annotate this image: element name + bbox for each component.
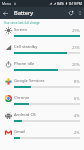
staticText: 4% [74,113,80,118]
staticText: 8% [74,79,80,84]
staticText: 2% [74,130,80,135]
staticText: 20% [72,62,80,67]
staticText: Cell standby [14,44,38,50]
staticText: Google Services [14,78,45,84]
button[interactable]: Android OS [0,110,84,127]
button[interactable]: Navigate up [0,7,11,19]
staticText: Battery [14,9,34,17]
staticText: Screen [14,27,27,33]
button[interactable]: Chrome [0,93,84,110]
staticText: 6% [74,96,80,101]
button[interactable]: Google Services [0,76,84,93]
staticText: Menu [2,1,12,6]
button[interactable]: Cell standby [0,42,84,59]
button[interactable]: Screen [0,25,84,42]
staticText: Use since last full charge [4,21,40,25]
staticText: Phone idle [14,61,35,67]
staticText: 23% [72,45,80,50]
staticText: 84% [57,1,64,6]
button[interactable]: Gmail [0,127,84,144]
button[interactable]: Refresh [66,7,76,19]
staticText: 29% [72,28,80,33]
staticText: Gmail [14,129,26,135]
button[interactable]: Phone idle [0,59,84,76]
button[interactable]: More options [76,7,84,19]
staticText: 8:19 PM [69,1,82,6]
staticText: Chrome [14,95,30,101]
staticText: Android OS [14,112,36,118]
